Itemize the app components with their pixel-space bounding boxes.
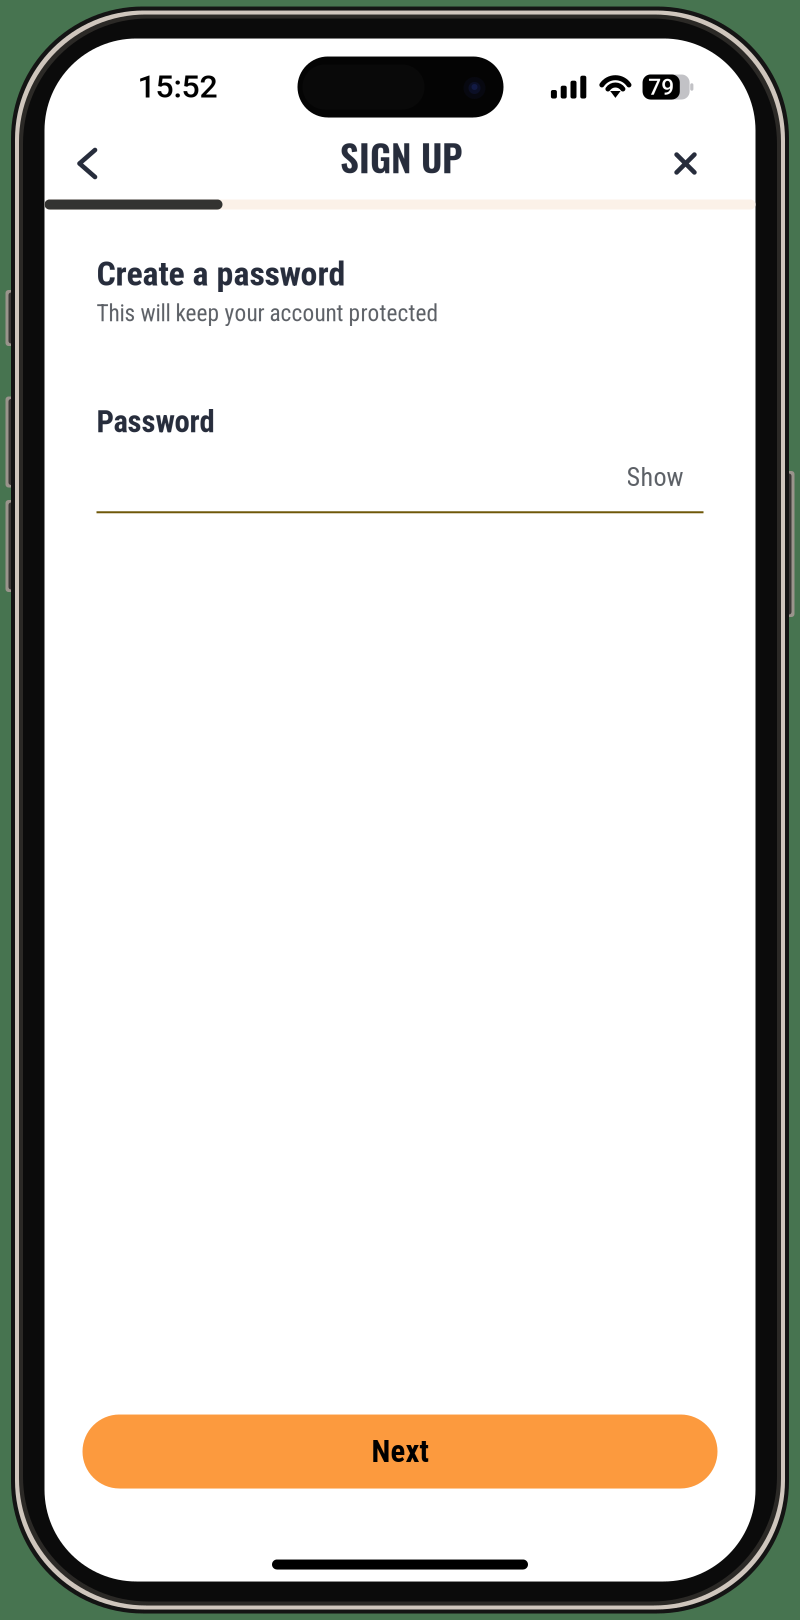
staticText: Next <box>371 1433 428 1469</box>
staticText: Password <box>96 404 214 440</box>
staticText: 15:52 <box>137 68 217 105</box>
staticText: Create a password <box>96 254 345 294</box>
staticText: 79 <box>648 74 674 100</box>
button[interactable]: Close <box>649 129 721 197</box>
staticText: Show <box>626 462 683 492</box>
staticText: SIGN UP <box>340 129 462 184</box>
button[interactable]: Next <box>82 1414 717 1488</box>
button[interactable]: Show <box>619 455 690 499</box>
staticText: This will keep your account protected <box>96 300 438 327</box>
button[interactable]: Back <box>51 129 123 197</box>
